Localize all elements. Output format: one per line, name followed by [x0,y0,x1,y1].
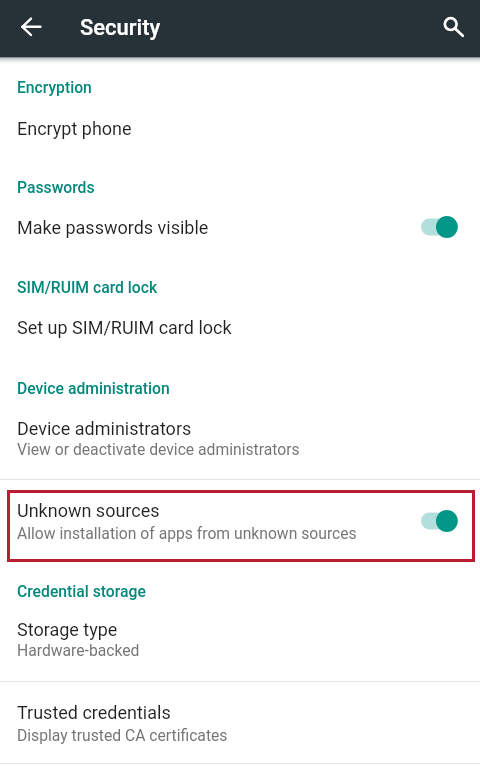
staticText: Passwords [17,178,95,196]
button[interactable]: Storage type [0,613,480,680]
button[interactable]: Encrypt phone [0,106,480,150]
staticText: Unknown sources [17,500,160,521]
staticText: Encrypt phone [17,118,132,139]
staticText: Display trusted CA certificates [17,726,228,744]
staticText: Device administration [17,379,170,397]
staticText: Trusted credentials [17,702,171,723]
button[interactable]: Allow installation of apps from unknown … [407,499,463,543]
button[interactable]: Search [423,0,478,57]
staticText: Device administrators [17,418,192,439]
staticText: Credential storage [17,582,146,600]
staticText: Make passwords visible [17,217,209,238]
staticText: Security [80,15,161,41]
button[interactable]: Device administrators [0,410,480,478]
staticText: Hardware-backed [17,641,140,659]
button[interactable]: Trusted credentials [0,695,480,762]
button[interactable]: Set up SIM/RUIM card lock [0,306,480,350]
staticText: Set up SIM/RUIM card lock [17,317,232,338]
staticText: View or deactivate device administrators [17,440,300,458]
button[interactable]: Unknown sources [0,492,480,558]
staticText: Storage type [17,619,118,640]
staticText: Allow installation of apps from unknown … [17,524,357,542]
button[interactable]: Make passwords visible [407,205,463,249]
staticText: SIM/RUIM card lock [17,278,158,296]
staticText: Encryption [17,78,92,96]
button[interactable]: Make passwords visible [0,206,480,250]
button[interactable]: Navigate up [3,0,58,57]
